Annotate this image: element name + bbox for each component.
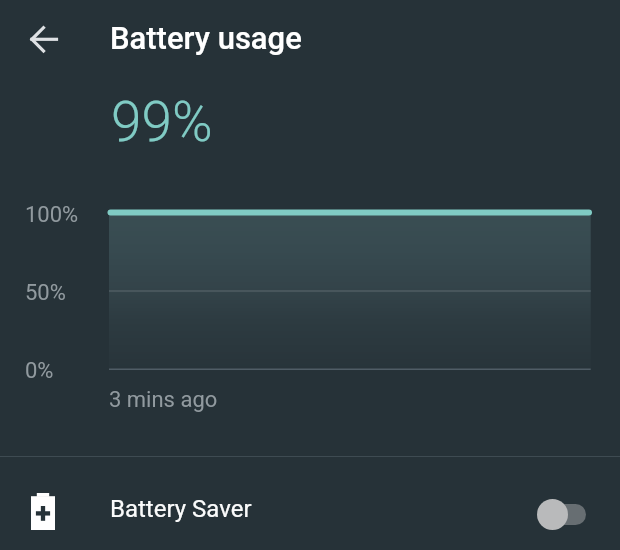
- button[interactable]: Back: [15, 12, 71, 68]
- staticText: 99%: [111, 90, 213, 154]
- staticText: Battery Saver: [110, 495, 252, 523]
- button[interactable]: Battery Saver: [0, 457, 620, 550]
- staticText: 0%: [25, 358, 54, 384]
- staticText: Battery usage: [110, 20, 302, 56]
- staticText: 50%: [25, 280, 66, 306]
- staticText: 3 mins ago: [109, 387, 218, 413]
- staticText: 100%: [25, 202, 79, 228]
- button[interactable]: Battery Saver toggle, off: [525, 490, 597, 538]
